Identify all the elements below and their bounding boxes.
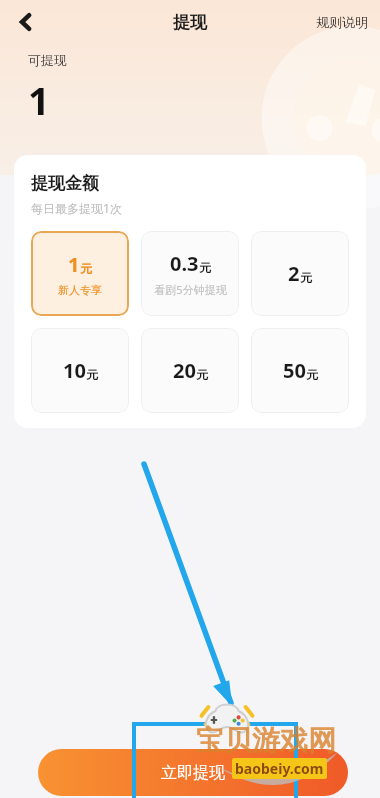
staticText: 2 (288, 260, 300, 287)
staticText: 看剧5分钟提现 (154, 282, 227, 297)
staticText: 元 (80, 261, 92, 276)
staticText: 20 (173, 357, 196, 384)
staticText: 规则说明 (316, 14, 368, 30)
button[interactable]: 0.3 (141, 231, 239, 316)
staticText: 每日最多提现1次 (31, 200, 122, 216)
button[interactable]: Back (6, 2, 46, 42)
button[interactable]: 20 (141, 328, 239, 413)
staticText: 新人专享 (58, 283, 102, 297)
staticText: 元 (86, 367, 98, 382)
staticText: 提现金额 (31, 173, 99, 194)
staticText: 元 (300, 270, 312, 285)
button[interactable]: 50 (251, 328, 349, 413)
button[interactable]: 立即提现 (38, 749, 348, 796)
staticText: baobeiy.com (235, 759, 324, 778)
button[interactable]: 10 (31, 328, 129, 413)
button[interactable]: 1 (31, 231, 129, 316)
staticText: 元 (199, 260, 211, 275)
staticText: 1 (68, 251, 80, 278)
button[interactable]: 2 (251, 231, 349, 316)
staticText: 元 (196, 367, 208, 382)
staticText: 10 (63, 357, 86, 384)
staticText: 50 (283, 357, 306, 384)
staticText: 宝贝游戏网 (196, 723, 336, 758)
staticText: 元 (306, 367, 318, 382)
staticText: 立即提现 (161, 763, 225, 783)
staticText: 提现 (173, 12, 207, 33)
button[interactable]: 规则说明 (304, 4, 380, 40)
staticText: 可提现 (28, 52, 67, 68)
staticText: 0.3 (170, 250, 199, 277)
staticText: 1 (28, 74, 50, 126)
